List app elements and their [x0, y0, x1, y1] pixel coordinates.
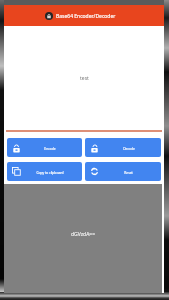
button[interactable]: Copy to clipboard [7, 162, 82, 181]
button[interactable]: Decode [85, 138, 161, 157]
staticText: Decode [123, 146, 135, 150]
staticText: Encode [44, 146, 56, 150]
button[interactable]: Encode [7, 138, 82, 157]
staticText: Base64 Encoder/Decoder [56, 13, 116, 20]
staticText: test [80, 75, 89, 82]
button[interactable]: Reset [85, 162, 161, 181]
staticText: Copy to clipboard [36, 170, 64, 174]
staticText: dGVzdA== [71, 231, 96, 238]
staticText: Reset [124, 170, 133, 174]
